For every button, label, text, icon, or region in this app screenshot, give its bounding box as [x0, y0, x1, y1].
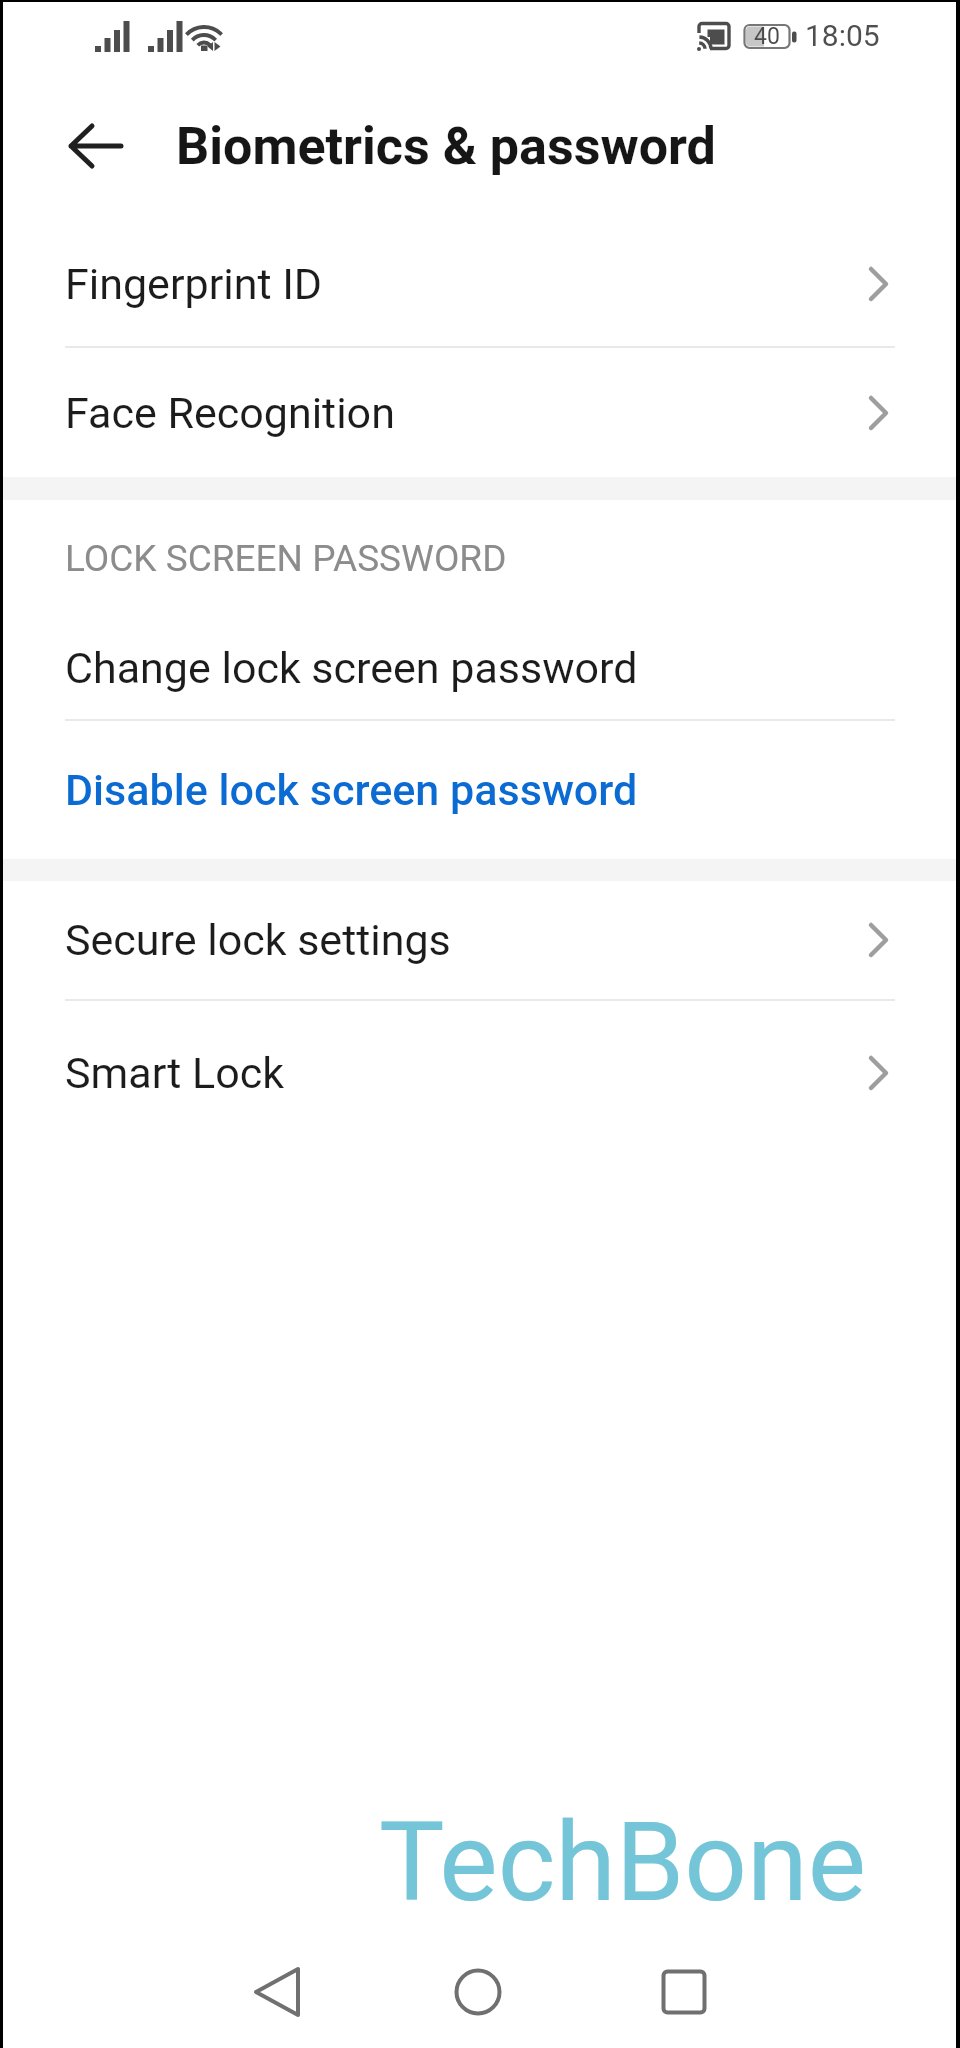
button[interactable]: Secure lock settings [0, 881, 960, 999]
button[interactable]: Change lock screen password [0, 616, 960, 719]
staticText: Disable lock screen password [65, 765, 638, 815]
staticText: Change lock screen password [65, 643, 638, 693]
staticText: Secure lock settings [65, 915, 451, 965]
button[interactable] [654, 1962, 714, 2022]
button[interactable] [448, 1962, 508, 2022]
button[interactable]: Disable lock screen password [0, 721, 960, 859]
staticText: 18:05 [805, 18, 880, 53]
staticText: LOCK SCREEN PASSWORD [65, 537, 507, 580]
staticText: Face Recognition [65, 388, 395, 438]
staticText: Biometrics & password [176, 116, 716, 177]
button[interactable] [56, 106, 136, 186]
staticText: 40 [754, 23, 780, 50]
staticText: Fingerprint ID [65, 259, 323, 309]
staticText: Smart Lock [65, 1048, 284, 1098]
button[interactable] [247, 1962, 307, 2022]
staticText: TechBone [379, 1798, 867, 1927]
button[interactable]: Face Recognition [0, 348, 960, 477]
button[interactable]: Smart Lock [0, 1001, 960, 1144]
button[interactable]: Fingerprint ID [0, 222, 960, 346]
